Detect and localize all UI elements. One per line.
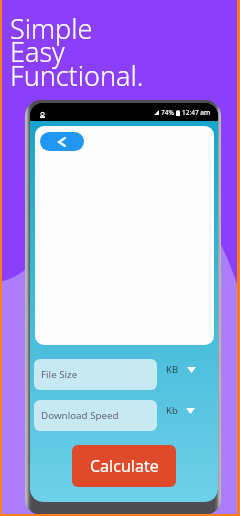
staticText: Simple Easy Functional. — [10, 10, 144, 94]
staticText: Download Speed — [41, 409, 119, 422]
button[interactable]: Back — [40, 132, 84, 151]
button[interactable]: Download Speed — [34, 400, 157, 431]
button[interactable]: File Size — [34, 359, 157, 390]
button[interactable]: KB — [166, 363, 196, 376]
staticText: File Size — [41, 368, 78, 381]
button[interactable]: Calculate — [72, 445, 176, 487]
staticText: 12:47 am — [182, 108, 211, 117]
staticText: KB — [166, 363, 179, 376]
staticText: Calculate — [90, 455, 159, 477]
button[interactable]: Kb — [166, 404, 195, 417]
staticText: 74% — [161, 108, 174, 117]
staticText: Kb — [166, 404, 178, 417]
